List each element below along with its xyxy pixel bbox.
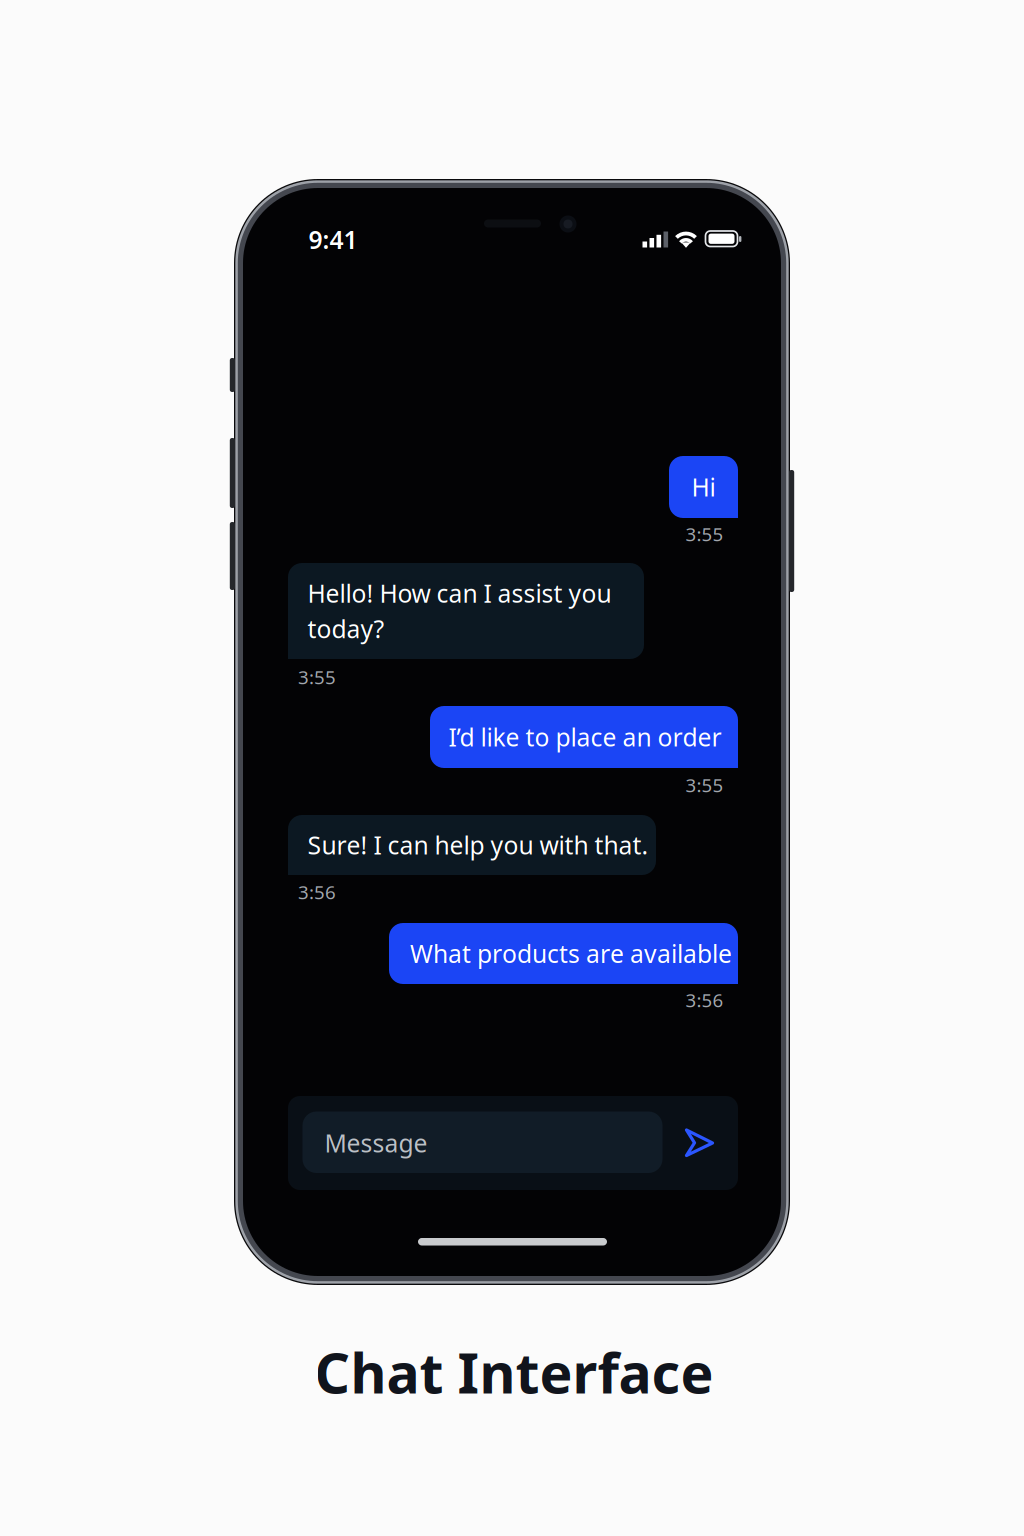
button[interactable]: I’d like to place an order xyxy=(0,0,1024,1536)
staticText: Hello! How can I assist you xyxy=(307,576,611,610)
staticText: Hi xyxy=(691,470,715,504)
button[interactable]: What products are available xyxy=(0,0,1024,1536)
staticText: 3:55 xyxy=(298,664,336,690)
staticText: Message xyxy=(324,1126,427,1160)
staticText: 3:56 xyxy=(298,879,336,905)
staticText: Sure! I can help you with that. xyxy=(307,828,648,862)
staticText: today? xyxy=(307,612,384,646)
button[interactable]: Send xyxy=(0,0,1024,1536)
staticText: 3:55 xyxy=(685,521,723,547)
button[interactable]: Sure! I can help you with that. xyxy=(0,0,1024,1536)
staticText: 3:55 xyxy=(685,772,723,798)
button[interactable]: Hi xyxy=(0,0,1024,1536)
staticText: 9:41 xyxy=(308,223,357,256)
staticText: 3:56 xyxy=(685,987,723,1013)
staticText: I’d like to place an order xyxy=(448,720,721,754)
staticText: What products are available xyxy=(410,937,732,970)
button[interactable]: Message xyxy=(0,0,1024,1536)
button[interactable]: Hello! How can I assist you xyxy=(0,0,1024,1536)
staticText: Chat Interface xyxy=(314,1334,713,1410)
